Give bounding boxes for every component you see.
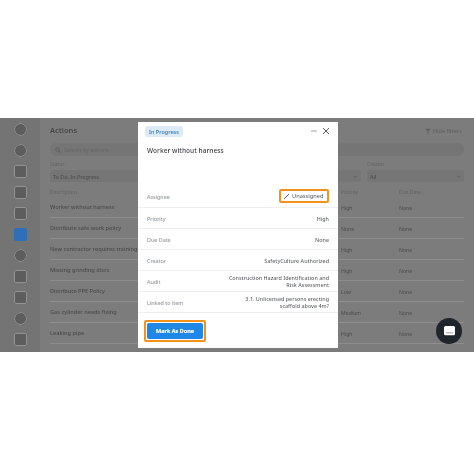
button[interactable]: Audit [147,271,329,291]
staticText: None [399,309,413,316]
button[interactable]: Gas cylinder needs fixing [50,302,464,322]
staticText: Hide filters [433,127,462,134]
button[interactable]: Navigation item [14,165,27,178]
staticText: Leaking pipe [50,329,85,337]
button[interactable]: New contractor requires training [50,239,464,259]
staticText: None [399,246,413,253]
staticText: Mark As Done [156,327,194,335]
button[interactable]: Navigation item [14,144,27,157]
staticText: High [341,246,353,253]
button[interactable]: Hide filters [423,125,464,136]
button[interactable]: Navigation item [14,291,27,304]
staticText: SafetyCulture Authorized [225,267,286,274]
staticText: Priority [147,215,166,222]
button[interactable]: Navigation item [14,270,27,283]
button[interactable]: Linked to item [147,292,329,312]
staticText: All [370,173,377,180]
staticText: None [399,225,413,232]
staticText: High [341,267,353,274]
staticText: Priority [341,189,359,196]
staticText: Assignee [147,193,170,200]
button[interactable]: Navigation item [14,249,27,262]
staticText: Distribute safe work policy [50,224,122,232]
staticText: None [399,204,413,211]
staticText: SafetyCulture Authorized [225,309,286,316]
staticText: None [399,288,413,295]
staticText: In Progress [149,128,179,135]
button[interactable]: Missing grinding discs [50,260,464,280]
button[interactable]: Navigation item [14,333,27,346]
staticText: High [341,330,353,337]
button[interactable]: Navigation item [14,186,27,199]
staticText: Medium [341,309,362,316]
button[interactable]: Priority [147,208,329,228]
staticText: Due Date [399,189,421,196]
button[interactable]: Due Date [147,229,329,249]
staticText: Search by actions [64,146,109,153]
staticText: Description [50,189,77,196]
staticText: Construction Hazard Identification and R… [228,274,329,288]
staticText: New contractor requires training [50,245,138,253]
staticText: Creator [367,161,385,168]
button[interactable]: In Progress [145,126,183,137]
staticText: Linked to item [147,299,184,306]
button[interactable]: Leaking pipe [50,323,464,343]
staticText: High [316,215,329,222]
staticText: Audit [147,278,161,285]
staticText: Worker without harness [50,203,115,211]
button[interactable]: Unassigned [284,192,324,200]
staticText: Status [50,161,65,168]
staticText: SafetyCulture Authorized [225,288,286,295]
button[interactable]: Distribute PPE Policy [50,281,464,301]
button[interactable]: Assignee [147,185,329,207]
button[interactable]: Search by actions [50,143,464,156]
staticText: None [315,236,329,243]
staticText: Creator [147,257,167,264]
button[interactable]: Navigation item [14,207,27,220]
button[interactable]: Close [321,126,331,136]
button[interactable]: Distribute safe work policy [50,218,464,238]
staticText: None [399,330,413,337]
button[interactable]: Navigation item [14,123,27,136]
button[interactable]: Open chat [436,318,462,344]
staticText: Actions [50,125,78,135]
staticText: 3.1. Unlicensed persons erecting scaffol… [245,295,329,309]
button[interactable] [264,170,361,182]
button[interactable]: Worker without harness [50,197,464,217]
staticText: Distribute PPE Policy [50,287,106,295]
staticText: Due Date [147,236,171,243]
staticText: High [341,204,353,211]
staticText: SafetyCulture Authorized [225,246,286,253]
staticText: None [341,225,355,232]
staticText: Gas cylinder needs fixing [50,308,117,316]
staticText: SafetyCulture Authorized [225,225,286,232]
staticText: Low [341,288,351,295]
button[interactable]: Mark As Done [147,323,203,339]
button[interactable]: Creator [147,250,329,270]
button[interactable]: Navigation item [14,312,27,325]
staticText: Missing grinding discs [50,266,110,274]
staticText: Unassigned [292,192,324,200]
button[interactable]: Navigation item [14,228,27,241]
staticText: Worker without harness [147,146,224,155]
button[interactable]: Minimise [309,126,319,136]
staticText: SafetyCulture Authorized [225,204,286,211]
staticText: None [399,267,413,274]
staticText: To Do, In Progress [53,173,100,180]
button[interactable]: To Do, In Progress [50,170,155,182]
staticText: SafetyCulture Authorized [264,257,329,264]
